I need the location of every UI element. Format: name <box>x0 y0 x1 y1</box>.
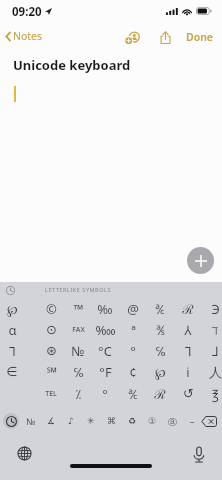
button[interactable]: ™ <box>65 298 91 319</box>
button[interactable]: Add attachment <box>187 247 214 274</box>
button[interactable]: № <box>21 410 41 432</box>
staticText: ① <box>148 416 157 426</box>
staticText: ↺ <box>183 386 194 401</box>
staticText: ‱ <box>95 321 116 339</box>
staticText: ℘ <box>155 363 166 381</box>
staticText: © <box>46 300 57 318</box>
staticText: ª <box>131 321 136 339</box>
button[interactable]: ‱ <box>92 319 118 340</box>
button[interactable]: ℥ <box>202 383 222 404</box>
staticText: °F <box>99 363 112 381</box>
staticText: № <box>71 342 85 360</box>
button[interactable]: ° <box>92 383 118 404</box>
button[interactable]: ℸ <box>202 319 222 340</box>
staticText: ⊙ <box>46 322 57 337</box>
staticText: FAX <box>72 325 85 335</box>
staticText: ♪ <box>68 416 74 426</box>
button[interactable]: Notes <box>0 29 51 43</box>
staticText: Ꞁ <box>9 342 16 360</box>
button[interactable]: 人 <box>202 361 222 382</box>
button[interactable]: Delete <box>199 410 219 432</box>
button[interactable]: – <box>182 410 202 432</box>
button[interactable]: ⌘ <box>101 410 121 432</box>
button[interactable]: TEL <box>38 383 64 404</box>
staticText: № <box>26 415 36 427</box>
button[interactable]: °C <box>92 340 118 361</box>
button[interactable]: ℁ <box>147 319 173 340</box>
button[interactable]: ⊛ <box>38 340 64 361</box>
button[interactable]: ‰ <box>92 298 118 319</box>
staticText: 09:20 <box>12 4 42 20</box>
button[interactable]: ∈ <box>0 361 25 382</box>
button[interactable]: ⊙ <box>38 319 64 340</box>
staticText: ℅ <box>73 363 84 381</box>
button[interactable]: ℠ <box>38 361 64 382</box>
staticText: ⅃ <box>212 342 219 360</box>
staticText: ⌘ <box>107 416 116 426</box>
button[interactable]: Done <box>181 25 219 49</box>
staticText: ℘ <box>7 300 18 318</box>
staticText: ℛ <box>154 385 166 403</box>
button[interactable]: ℘ <box>147 361 173 382</box>
button[interactable]: ° <box>120 340 146 361</box>
button[interactable]: °F <box>92 361 118 382</box>
button[interactable]: ℅ <box>65 361 91 382</box>
staticText: ¢ <box>129 363 137 381</box>
staticText: ⅄ <box>184 321 192 339</box>
staticText: ♻ <box>128 416 137 426</box>
staticText: ℈ <box>211 300 220 318</box>
button[interactable]: @ <box>120 298 146 319</box>
staticText: LETTERLIKE SYMBOLS <box>45 286 112 293</box>
button[interactable]: ♪ <box>61 410 81 432</box>
button[interactable]: ① <box>142 410 162 432</box>
button[interactable]: ℛ <box>175 298 201 319</box>
button[interactable]: Ꞁ <box>0 340 25 361</box>
button[interactable]: ⅄ <box>175 319 201 340</box>
button[interactable]: № <box>65 340 91 361</box>
staticText: ™ <box>73 300 84 318</box>
button[interactable]: Next keyboard <box>13 442 35 464</box>
button[interactable]: ℛ <box>147 383 173 404</box>
staticText: ℀ <box>128 385 138 403</box>
staticText: ℥ <box>212 385 219 403</box>
staticText: ⓐ <box>168 416 177 427</box>
button[interactable]: ℅ <box>147 340 173 361</box>
button[interactable]: ℹ <box>175 361 201 382</box>
button[interactable]: ✳ <box>81 410 101 432</box>
button[interactable]: ↺ <box>175 383 201 404</box>
button[interactable]: Dictate <box>188 444 209 465</box>
button[interactable]: ⓐ <box>162 410 182 432</box>
staticText: ‰ <box>97 300 113 318</box>
staticText: ✳ <box>87 416 95 426</box>
staticText: ⊛ <box>46 343 57 358</box>
button[interactable]: Share <box>155 25 175 49</box>
staticText: ° <box>102 385 108 403</box>
staticText: Done <box>186 30 214 44</box>
staticText: ℸ <box>212 321 218 339</box>
button[interactable]: ⁒ <box>65 383 91 404</box>
button[interactable]: Recently used <box>1 410 21 432</box>
button[interactable]: ℈ <box>202 298 222 319</box>
staticText: ∡ <box>47 416 56 426</box>
button[interactable]: Add People <box>121 26 143 50</box>
staticText: ⅂ <box>185 342 192 360</box>
button[interactable]: ∡ <box>41 410 61 432</box>
staticText: @ <box>127 300 139 318</box>
button[interactable]: ℘ <box>0 298 25 319</box>
staticText: ℠ <box>46 363 57 381</box>
button[interactable]: ℀ <box>120 383 146 404</box>
button[interactable]: α <box>0 319 25 340</box>
staticText: ℛ <box>182 300 194 318</box>
staticText: Unicode keyboard <box>13 56 131 74</box>
staticText: – <box>190 415 195 427</box>
button[interactable]: ℀ <box>147 298 173 319</box>
button[interactable]: ¢ <box>120 361 146 382</box>
button[interactable]: FAX <box>65 319 91 340</box>
button[interactable]: ♻ <box>122 410 142 432</box>
button[interactable]: ª <box>120 319 146 340</box>
button[interactable]: © <box>38 298 64 319</box>
staticText: ℁ <box>156 321 165 339</box>
button[interactable]: ⅃ <box>202 340 222 361</box>
staticText: ∈ <box>6 364 18 379</box>
button[interactable]: ⅂ <box>175 340 201 361</box>
